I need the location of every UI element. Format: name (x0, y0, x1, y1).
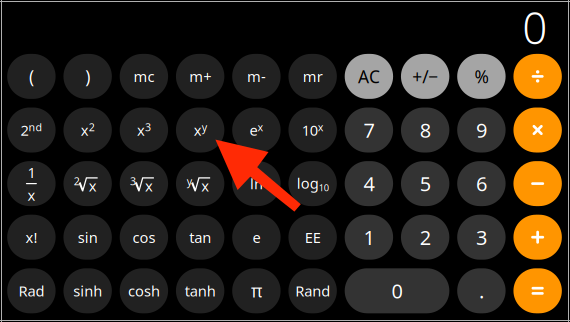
staticText: ) (85, 65, 90, 88)
button[interactable]: Random (288, 268, 337, 313)
button[interactable]: mr (288, 54, 337, 99)
button[interactable]: 2 (401, 215, 449, 260)
button[interactable]: Minus (513, 161, 562, 206)
staticText: 2nd (20, 120, 42, 140)
staticText: Rad (18, 281, 44, 301)
staticText: 7 (363, 117, 374, 143)
staticText: 1 (363, 224, 374, 250)
staticText: 1 (27, 162, 35, 182)
button[interactable]: 5 (401, 161, 449, 206)
staticText: e (252, 227, 260, 247)
button[interactable]: sin (63, 215, 112, 260)
button[interactable]: Radians (7, 268, 56, 313)
staticText: % (474, 65, 488, 88)
button[interactable]: Percent (457, 54, 506, 99)
staticText: 0 (391, 277, 402, 304)
staticText: x (89, 176, 97, 196)
button[interactable]: 0 (345, 268, 449, 313)
button[interactable]: x cubed (120, 107, 168, 152)
button[interactable]: Divide (513, 54, 562, 99)
button[interactable]: e to the x (232, 107, 281, 152)
button[interactable]: Equals (513, 268, 562, 313)
button[interactable]: pi (232, 268, 281, 313)
button[interactable]: ( (7, 54, 56, 99)
button[interactable]: ) (63, 54, 112, 99)
button[interactable]: one over x (7, 161, 56, 206)
button[interactable]: x squared (63, 107, 112, 152)
button[interactable]: Multiply (513, 107, 562, 152)
button[interactable]: 9 (457, 107, 506, 152)
staticText: mc (133, 67, 154, 86)
button[interactable]: mc (120, 54, 168, 99)
button[interactable]: Plus Minus (401, 54, 449, 99)
staticText: tanh (185, 281, 216, 301)
staticText: 5 (420, 170, 431, 197)
button[interactable]: m+ (176, 54, 224, 99)
button[interactable]: tan (176, 215, 224, 260)
staticText: m- (247, 67, 266, 86)
staticText: y (187, 174, 192, 188)
staticText: 6 (476, 170, 487, 197)
staticText: cosh (128, 281, 160, 301)
staticText: x (201, 176, 209, 196)
button[interactable]: cosh (120, 268, 168, 313)
staticText: 4 (363, 170, 374, 197)
button[interactable]: ten to the x (288, 107, 337, 152)
button[interactable]: Square root (63, 161, 112, 206)
staticText: 3 (130, 174, 136, 188)
button[interactable]: All Clear (345, 54, 393, 99)
staticText: cos (132, 227, 155, 247)
staticText: 10x (302, 120, 324, 140)
staticText: ( (29, 65, 34, 88)
button[interactable]: m- (232, 54, 281, 99)
staticText: 9 (476, 117, 487, 143)
staticText: AC (358, 65, 380, 88)
button[interactable]: x to the y (176, 107, 224, 152)
button[interactable]: 7 (345, 107, 393, 152)
staticText: x! (25, 227, 37, 247)
button[interactable]: Second (7, 107, 56, 152)
button[interactable]: e (232, 215, 281, 260)
staticText: x3 (137, 120, 151, 140)
button[interactable]: 6 (457, 161, 506, 206)
staticText: mr (303, 67, 323, 86)
staticText: m+ (189, 67, 211, 86)
staticText: x (145, 176, 153, 196)
button[interactable]: 4 (345, 161, 393, 206)
staticText: EE (305, 227, 321, 247)
button[interactable]: sinh (63, 268, 112, 313)
button[interactable]: EE (288, 215, 337, 260)
button[interactable]: Cube root (120, 161, 168, 206)
button[interactable]: 3 (457, 215, 506, 260)
staticText: x2 (81, 120, 95, 140)
staticText: 0 (522, 0, 547, 56)
staticText: 8 (420, 117, 431, 143)
staticText: xy (194, 120, 207, 140)
staticText: ln (250, 174, 263, 193)
button[interactable]: Plus (513, 215, 562, 260)
button[interactable]: y root of x (176, 161, 224, 206)
staticText: tan (189, 227, 211, 247)
staticText: 2 (74, 174, 80, 188)
staticText: π (251, 279, 262, 302)
button[interactable]: tanh (176, 268, 224, 313)
staticText: sinh (73, 281, 102, 301)
staticText: sin (78, 227, 98, 247)
staticText: +/− (412, 65, 438, 88)
button[interactable]: cos (120, 215, 168, 260)
staticText: . (479, 277, 484, 304)
button[interactable]: 1 (345, 215, 393, 260)
staticText: Rand (295, 281, 330, 301)
button[interactable]: log base ten (288, 161, 337, 206)
button[interactable]: 8 (401, 107, 449, 152)
staticText: 3 (476, 224, 487, 250)
staticText: x (27, 185, 35, 205)
staticText: ex (249, 120, 263, 140)
staticText: log10 (297, 173, 329, 194)
button[interactable]: Decimal point (457, 268, 506, 313)
button[interactable]: natural log (232, 161, 281, 206)
staticText: 2 (420, 224, 431, 250)
button[interactable]: factorial (7, 215, 56, 260)
